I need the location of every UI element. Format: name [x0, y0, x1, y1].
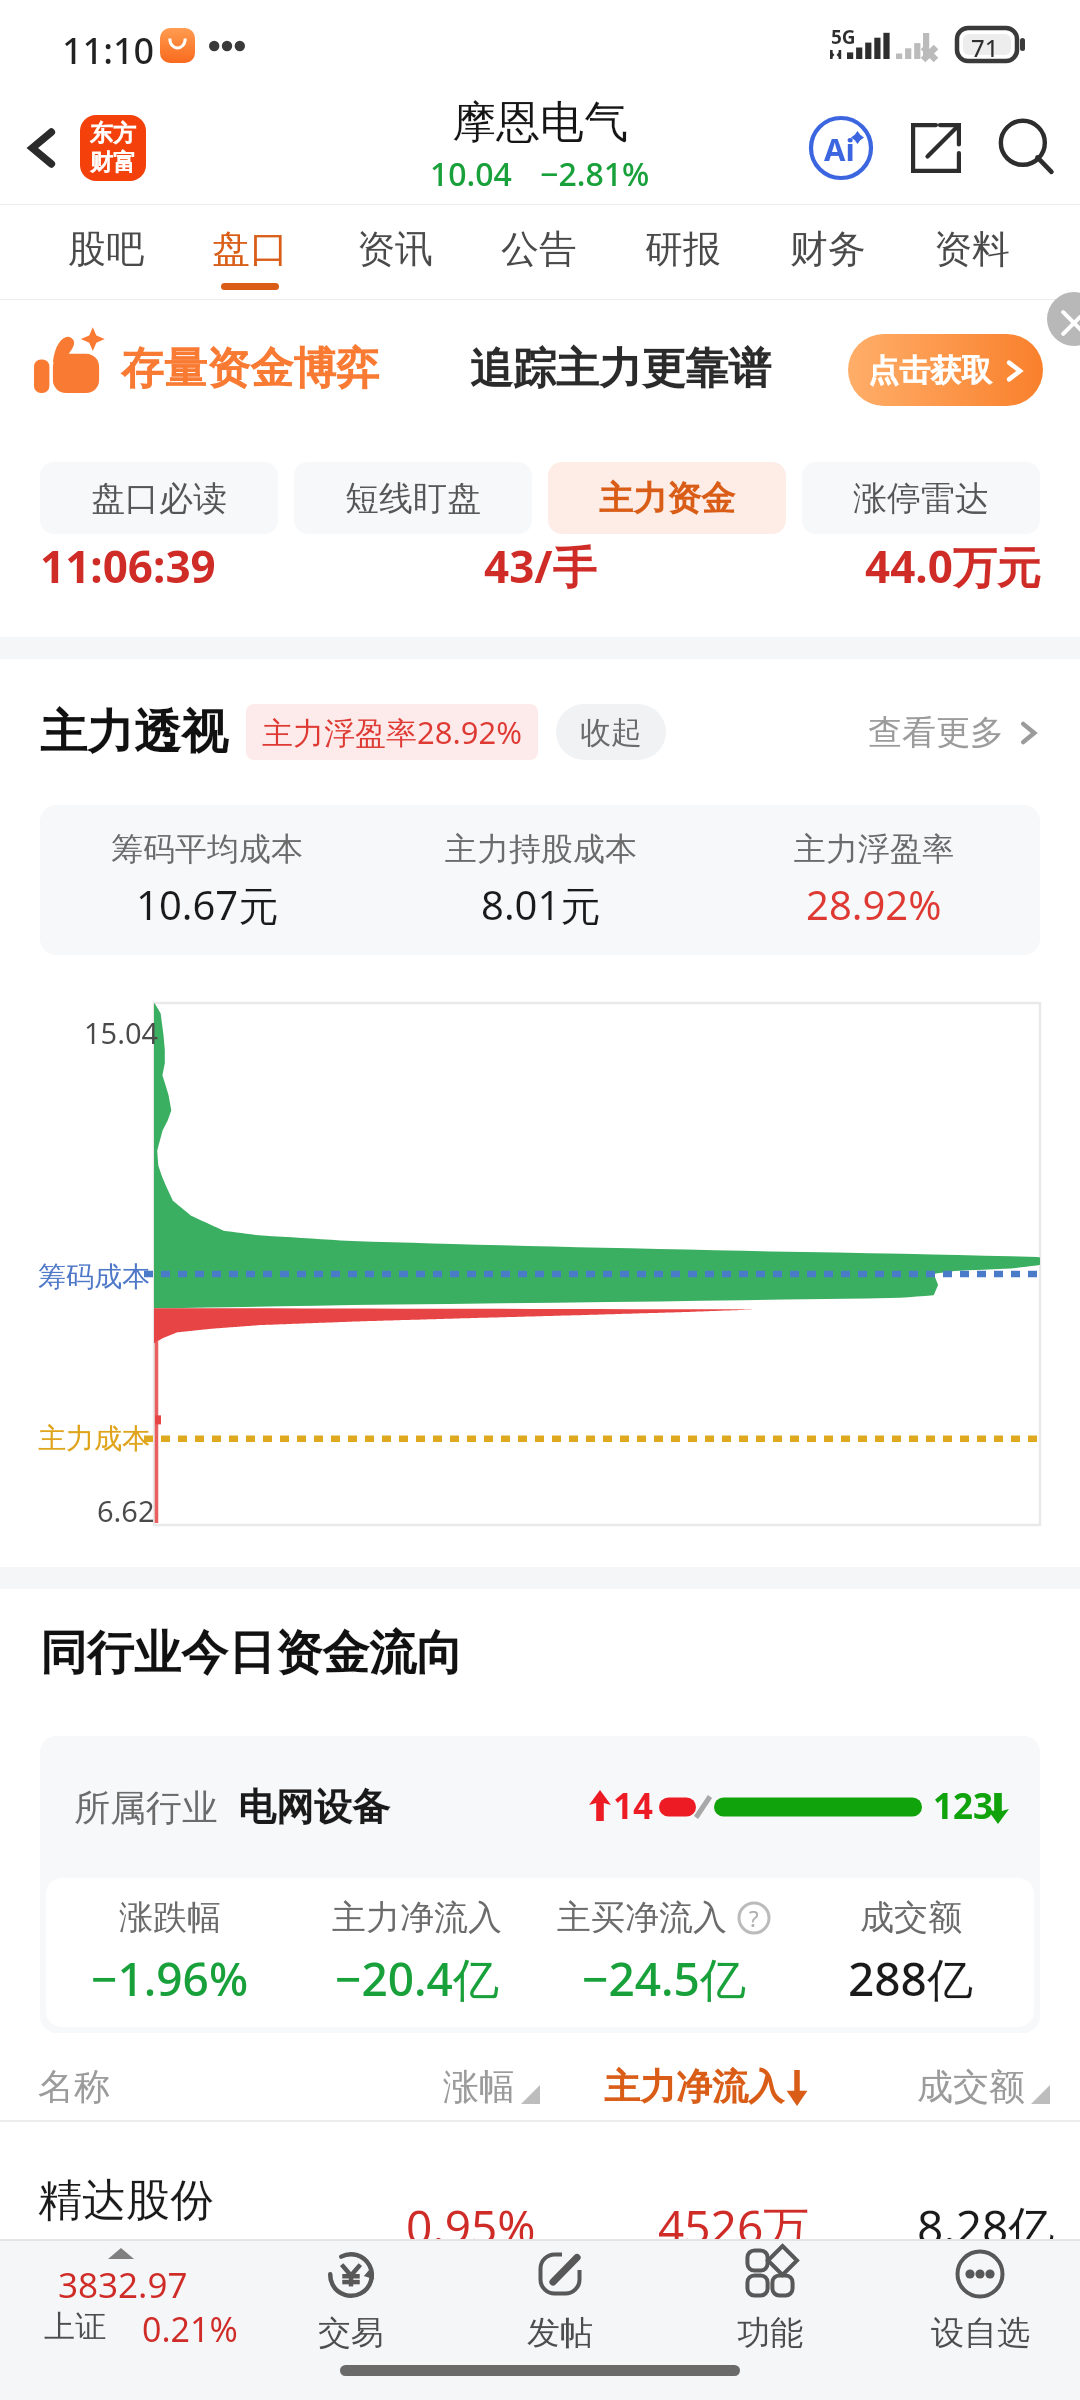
staticText: 主力资金 [599, 477, 735, 520]
button[interactable]: Back [8, 113, 78, 183]
staticText: 同行业今日资金流向 [40, 1624, 463, 1683]
staticText: 主力净流入 [604, 2064, 784, 2109]
staticText: 主力透视 [40, 703, 228, 762]
staticText: 5G [831, 24, 856, 50]
button[interactable]: Post [455, 2239, 665, 2400]
staticText: 0.95% [406, 2195, 536, 2258]
staticText: 上证 [44, 2307, 106, 2346]
button[interactable]: 研报 [645, 205, 721, 290]
button[interactable]: 涨停雷达 [802, 462, 1040, 534]
button[interactable]: 公告 [501, 205, 577, 290]
button[interactable]: Functions [665, 2239, 875, 2400]
staticText: 点击获取 [868, 351, 992, 390]
staticText: 71 [971, 31, 999, 64]
staticText: 主力浮盈率 [794, 829, 954, 869]
button[interactable]: AI assistant [806, 113, 876, 183]
staticText: 发帖 [527, 2312, 593, 2354]
staticText: 涨幅 [443, 2064, 515, 2109]
button[interactable]: Share [901, 113, 971, 183]
staticText: 288亿 [848, 1947, 973, 2010]
staticText: −20.4亿 [335, 1947, 499, 2010]
staticText: 10.04 [430, 152, 512, 196]
staticText: 交易 [318, 2312, 384, 2354]
staticText: 所属行业 [74, 1785, 218, 1830]
staticText: ? [749, 1903, 759, 1933]
staticText: 电网设备 [238, 1783, 390, 1831]
staticText: 14 [613, 1782, 654, 1830]
staticText: 8.28亿 [917, 2195, 1055, 2258]
staticText: −2.81% [540, 152, 650, 196]
staticText: −1.96% [91, 1947, 249, 2010]
staticText: 筹码平均成本 [111, 829, 303, 869]
button[interactable]: 股吧 [68, 205, 144, 290]
staticText: 6.62 [97, 1491, 155, 1530]
staticText: 11:10 [62, 26, 155, 75]
staticText: 公告 [501, 225, 577, 273]
staticText: 主力浮盈率28.92% [262, 711, 522, 753]
staticText: 主力净流入 [332, 1896, 502, 1939]
button[interactable]: Watchlist [875, 2239, 1080, 2400]
staticText: 功能 [737, 2312, 803, 2354]
staticText: 主力持股成本 [445, 829, 637, 869]
staticText: 主买净流入 [557, 1896, 727, 1939]
staticText: 0.21% [142, 2306, 238, 2352]
staticText: 精达股份 [38, 2173, 214, 2228]
button[interactable]: 主力浮盈率28.92% [246, 704, 538, 760]
staticText: 28.92% [806, 877, 942, 931]
button[interactable]: Help [737, 1901, 771, 1935]
button[interactable]: 收起 [556, 704, 666, 760]
staticText: 追踪主力更靠谱 [470, 342, 771, 396]
staticText: −24.5亿 [582, 1947, 746, 2010]
staticText: 涨跌幅 [119, 1896, 221, 1939]
button[interactable]: 查看更多 [868, 711, 1040, 754]
button[interactable]: Search [992, 113, 1062, 183]
staticText: 设自选 [931, 2312, 1030, 2354]
button[interactable]: 点击获取 [848, 334, 1043, 406]
staticText: 盘口 [212, 225, 288, 273]
staticText: 存量资金博弈 [121, 342, 379, 396]
staticText: 43/手 [484, 540, 597, 596]
button[interactable]: East Money [80, 115, 146, 181]
button[interactable]: 3832.97 [0, 2239, 246, 2400]
staticText: 123 [933, 1782, 994, 1830]
button[interactable]: 资料 [934, 205, 1010, 290]
staticText: 10.67元 [136, 877, 279, 932]
button[interactable]: 短线盯盘 [294, 462, 532, 534]
staticText: 东方 [90, 119, 136, 148]
button[interactable]: 盘口必读 [40, 462, 278, 534]
staticText: 4526万 [658, 2195, 810, 2258]
button[interactable]: 主力资金 [548, 462, 786, 534]
staticText: 财富 [90, 148, 136, 177]
staticText: 摩恩电气 [452, 95, 628, 150]
staticText: 成交额 [917, 2064, 1025, 2109]
staticText: 11:06:39 [40, 540, 216, 596]
staticText: 查看更多 [868, 711, 1004, 754]
staticText: 资讯 [357, 225, 433, 273]
staticText: 财务 [790, 225, 866, 273]
staticText: 15.04 [84, 1013, 159, 1052]
staticText: 8.01元 [481, 877, 601, 932]
button[interactable]: 盘口 [212, 205, 288, 290]
button[interactable]: Close ad [1047, 292, 1080, 346]
button[interactable]: 主力净流入 [604, 2064, 810, 2109]
staticText: 资料 [934, 225, 1010, 273]
staticText: 涨停雷达 [853, 477, 989, 520]
button[interactable]: 财务 [790, 205, 866, 290]
staticText: 成交额 [860, 1896, 962, 1939]
staticText: 股吧 [68, 225, 144, 273]
staticText: 短线盯盘 [345, 477, 481, 520]
button[interactable]: 精达股份 [0, 2150, 1080, 2239]
button[interactable]: 资讯 [357, 205, 433, 290]
staticText: 3832.97 [58, 2261, 188, 2309]
staticText: 研报 [645, 225, 721, 273]
staticText: 盘口必读 [91, 477, 227, 520]
staticText: 收起 [580, 713, 642, 752]
staticText: 筹码成本 [38, 1259, 150, 1294]
staticText: Ai [824, 128, 855, 170]
staticText: 名称 [38, 2064, 110, 2109]
button[interactable]: Trade [246, 2239, 456, 2400]
staticText: 44.0万元 [865, 540, 1041, 596]
staticText: 主力成本 [38, 1421, 150, 1456]
